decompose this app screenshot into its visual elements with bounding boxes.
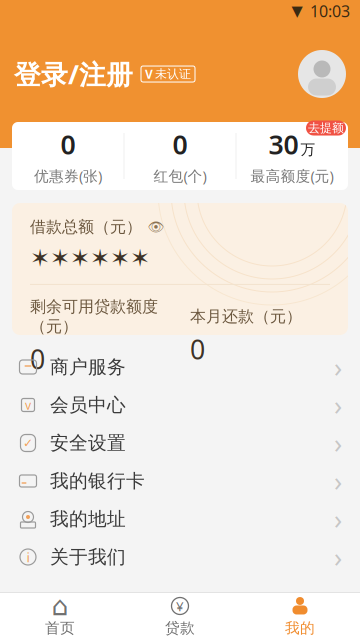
staticText: V: [145, 66, 153, 82]
button[interactable]: 我的银行卡: [0, 462, 360, 500]
staticText: 关于我们: [50, 545, 126, 568]
staticText: 安全设置: [50, 431, 126, 454]
staticText: v: [25, 397, 31, 413]
staticText: 优惠券(张): [34, 166, 102, 185]
staticText: 贷款: [165, 619, 195, 637]
staticText: ›: [334, 501, 342, 537]
staticText: 我的银行卡: [50, 469, 145, 492]
staticText: 0: [172, 127, 187, 162]
staticText: ›: [334, 387, 342, 423]
staticText: 借款总额（元）: [30, 217, 142, 237]
button[interactable]: 显示金额: [148, 221, 164, 233]
staticText: 最高额度(元): [250, 166, 333, 185]
button[interactable]: 0: [12, 122, 123, 190]
button[interactable]: 30: [236, 122, 347, 190]
staticText: 商户服务: [50, 355, 126, 378]
staticText: 我的地址: [50, 507, 126, 530]
staticText: ✶✶✶✶✶✶: [30, 245, 150, 272]
staticText: 10:03: [310, 0, 350, 22]
staticText: 红包(个): [153, 166, 206, 185]
staticText: i: [26, 548, 29, 566]
staticText: ›: [334, 349, 342, 385]
staticText: ¥: [176, 597, 184, 615]
staticText: 我的: [285, 619, 315, 637]
staticText: 会员中心: [50, 393, 126, 416]
staticText: 万: [300, 141, 315, 159]
staticText: ›: [334, 539, 342, 575]
staticText: 本月还款（元）: [190, 307, 302, 326]
button[interactable]: ¥: [120, 593, 240, 640]
button[interactable]: 商户服务: [0, 348, 360, 386]
staticText: 登录/注册: [14, 56, 133, 92]
staticText: ▼: [291, 3, 302, 19]
button[interactable]: ⌂: [0, 593, 120, 640]
staticText: 0: [30, 341, 45, 377]
staticText: 去提额: [308, 121, 344, 135]
button[interactable]: 我的地址: [0, 500, 360, 538]
button[interactable]: 去提额: [306, 120, 346, 135]
staticText: ›: [334, 463, 342, 499]
staticText: 👁: [147, 219, 164, 234]
staticText: ⌂: [51, 591, 68, 621]
button[interactable]: 0: [124, 122, 235, 190]
staticText: 0: [60, 127, 75, 162]
button[interactable]: 头像: [298, 50, 346, 98]
staticText: 30: [268, 127, 298, 162]
button[interactable]: ✓: [0, 424, 360, 462]
staticText: 未认证: [155, 67, 191, 81]
staticText: ✓: [23, 436, 33, 450]
button[interactable]: v: [0, 386, 360, 424]
button[interactable]: 我的: [240, 593, 360, 640]
staticText: ›: [334, 425, 342, 461]
staticText: 首页: [45, 619, 75, 637]
button[interactable]: i: [0, 538, 360, 576]
staticText: 剩余可用贷款额度（元）: [30, 297, 158, 336]
staticText: 0: [190, 331, 205, 367]
